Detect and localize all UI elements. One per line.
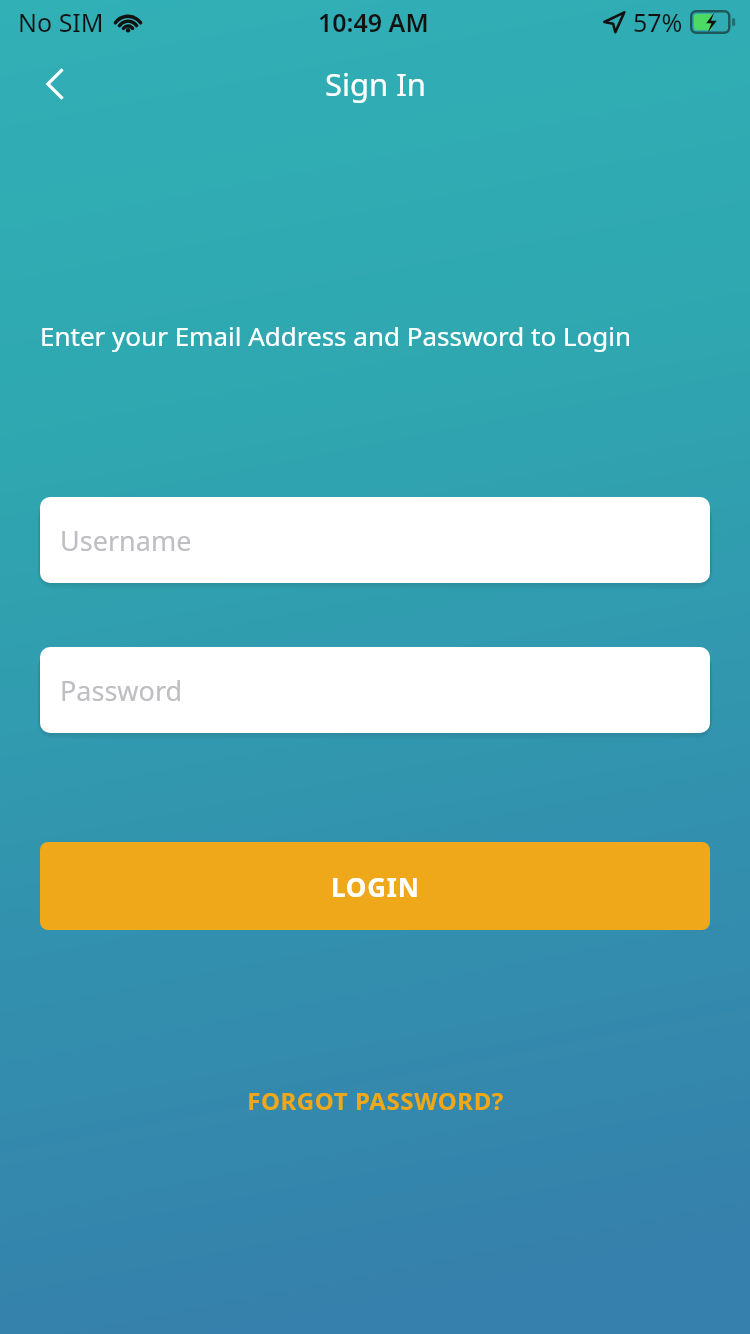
staticText: Enter your Email Address and Password to… [40, 318, 632, 353]
staticText: No SIM [18, 5, 104, 39]
staticText: FORGOT PASSWORD? [247, 1084, 504, 1117]
staticText: Username [60, 522, 192, 559]
button[interactable]: LOGIN [40, 842, 710, 930]
staticText: Password [60, 672, 183, 709]
button[interactable]: Username [40, 497, 710, 583]
staticText: 57% [633, 5, 683, 39]
staticText: LOGIN [331, 869, 420, 904]
button[interactable]: Password [40, 647, 710, 733]
button[interactable]: Back [24, 52, 88, 116]
button[interactable]: FORGOT PASSWORD? [0, 1077, 750, 1123]
staticText: Sign In [325, 63, 426, 105]
staticText: 10:49 AM [318, 5, 429, 39]
